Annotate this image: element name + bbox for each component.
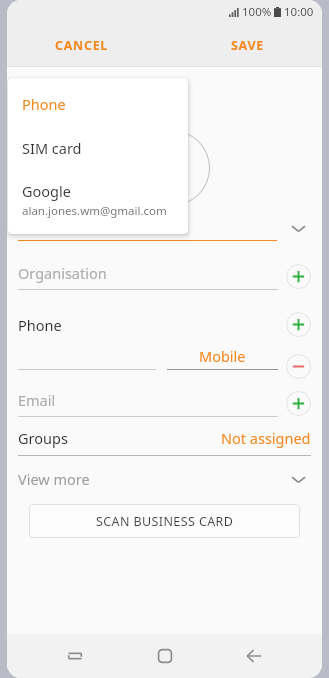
button[interactable]: View more <box>18 466 311 492</box>
staticText: Not assigned <box>221 428 311 448</box>
button[interactable]: Add phone <box>286 312 311 337</box>
button[interactable]: Mobile <box>167 346 278 370</box>
button[interactable]: CANCEL <box>49 31 115 60</box>
staticText: SCAN BUSINESS CARD <box>96 513 234 530</box>
button[interactable]: Add organisation <box>286 264 311 289</box>
button[interactable]: Add email <box>286 391 311 416</box>
button[interactable]: Remove phone <box>286 354 311 379</box>
button[interactable]: Recents <box>53 634 97 678</box>
staticText: Phone <box>22 94 66 114</box>
staticText: alan.jones.wm@gmail.com <box>22 203 167 219</box>
staticText: Organisation <box>18 263 107 283</box>
button[interactable]: Google <box>8 171 188 234</box>
button[interactable]: Expand name <box>285 215 311 241</box>
staticText: 100% <box>242 4 272 20</box>
staticText: Groups <box>18 428 68 448</box>
staticText: Phone <box>18 315 62 335</box>
staticText: Name <box>18 215 59 235</box>
staticText: Google <box>22 181 71 201</box>
button[interactable]: SCAN BUSINESS CARD <box>29 504 300 538</box>
staticText: SIM card <box>22 138 82 158</box>
button[interactable]: Back <box>232 634 276 678</box>
staticText: 10:00 <box>284 4 314 20</box>
staticText: CANCEL <box>55 37 109 54</box>
button[interactable]: Expand view more <box>285 466 311 492</box>
staticText: Email <box>18 390 56 410</box>
staticText: View more <box>18 469 90 489</box>
button[interactable]: Groups <box>18 428 311 448</box>
staticText: Mobile <box>199 346 246 366</box>
staticText: SAVE <box>231 37 264 54</box>
button[interactable]: SAVE <box>225 31 270 60</box>
button[interactable]: Home <box>143 634 187 678</box>
button[interactable]: SIM card <box>8 128 188 171</box>
button[interactable]: Phone <box>8 78 188 128</box>
